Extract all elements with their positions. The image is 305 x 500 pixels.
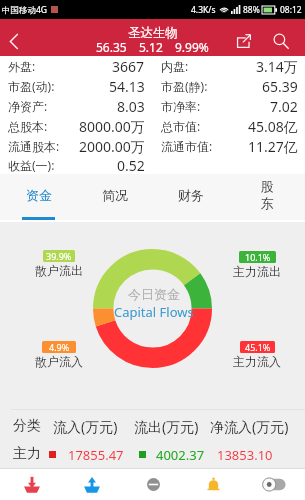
staticText: 圣达生物	[128, 25, 178, 41]
staticText: 0.52	[117, 156, 145, 174]
staticText: 简况	[102, 187, 128, 203]
staticText: 65.39	[262, 77, 298, 96]
staticText: 4002.37	[156, 446, 205, 464]
staticText: 内盘:	[161, 58, 189, 74]
staticText: 市盈(动):	[8, 78, 55, 94]
staticText: 主力流入	[233, 354, 281, 369]
button[interactable]: 财务	[153, 174, 229, 220]
staticText: 45.08亿	[248, 117, 298, 136]
button[interactable]: Search	[262, 24, 300, 58]
staticText: 11.27亿	[248, 137, 298, 156]
staticText: 净流入(万元)	[210, 417, 289, 436]
staticText: 资金	[26, 187, 52, 203]
staticText: 3667	[112, 57, 145, 76]
staticText: 13853.10	[217, 446, 273, 464]
staticText: 总股本:	[8, 118, 48, 134]
staticText: 3.14万	[256, 57, 298, 76]
staticText: 8.03	[117, 97, 145, 116]
staticText: 39.9%	[46, 250, 72, 262]
staticText: 外盘:	[8, 58, 36, 74]
button[interactable]: More	[245, 468, 303, 500]
staticText: 流通市值:	[161, 138, 213, 154]
button[interactable]: 资金	[0, 174, 77, 220]
staticText: 54.13	[109, 77, 145, 96]
staticText: 流通股本:	[8, 138, 60, 154]
staticText: 收益(一):	[8, 157, 55, 173]
button[interactable]: Back	[0, 23, 32, 59]
staticText: 今日资金	[128, 286, 180, 302]
staticText: Capital Flows	[114, 303, 194, 321]
staticText: 主力流出	[233, 264, 281, 279]
staticText: 市盈(静):	[161, 78, 208, 94]
button[interactable]: Sell	[63, 468, 121, 500]
staticText: 市净率:	[161, 98, 201, 114]
staticText: 4.9%	[49, 341, 70, 353]
staticText: 净资产:	[8, 98, 48, 114]
staticText: 8000.00万	[79, 117, 145, 136]
staticText: 主力	[13, 445, 41, 463]
staticText: 08:12	[280, 4, 302, 16]
staticText: 5.12	[139, 39, 163, 55]
staticText: 9.99%	[175, 39, 209, 55]
button[interactable]: Cancel order	[124, 468, 182, 500]
staticText: 流出(万元)	[134, 417, 199, 436]
button[interactable]: 股东	[229, 174, 305, 220]
button[interactable]: Alerts	[184, 468, 242, 500]
staticText: 56.35	[96, 39, 127, 55]
staticText: 财务	[178, 187, 204, 203]
staticText: 中国移动4G	[2, 4, 48, 16]
staticText: 45.1%	[245, 341, 271, 353]
staticText: 10.1%	[245, 251, 271, 263]
staticText: 2000.00万	[79, 137, 145, 156]
staticText: 总市值:	[161, 118, 201, 134]
staticText: 88%	[243, 4, 260, 16]
staticText: 流入(万元)	[53, 417, 118, 436]
staticText: 4.3K/s	[191, 4, 216, 16]
staticText: 17855.47	[68, 446, 124, 464]
staticText: 分类	[13, 417, 41, 435]
button[interactable]: Buy	[3, 468, 61, 500]
staticText: 散户流入	[35, 354, 83, 369]
button[interactable]: 简况	[77, 174, 153, 220]
button[interactable]: Share	[226, 24, 262, 58]
staticText: 股东	[260, 178, 274, 212]
staticText: 散户流出	[35, 263, 83, 278]
staticText: 7.02	[270, 97, 298, 116]
